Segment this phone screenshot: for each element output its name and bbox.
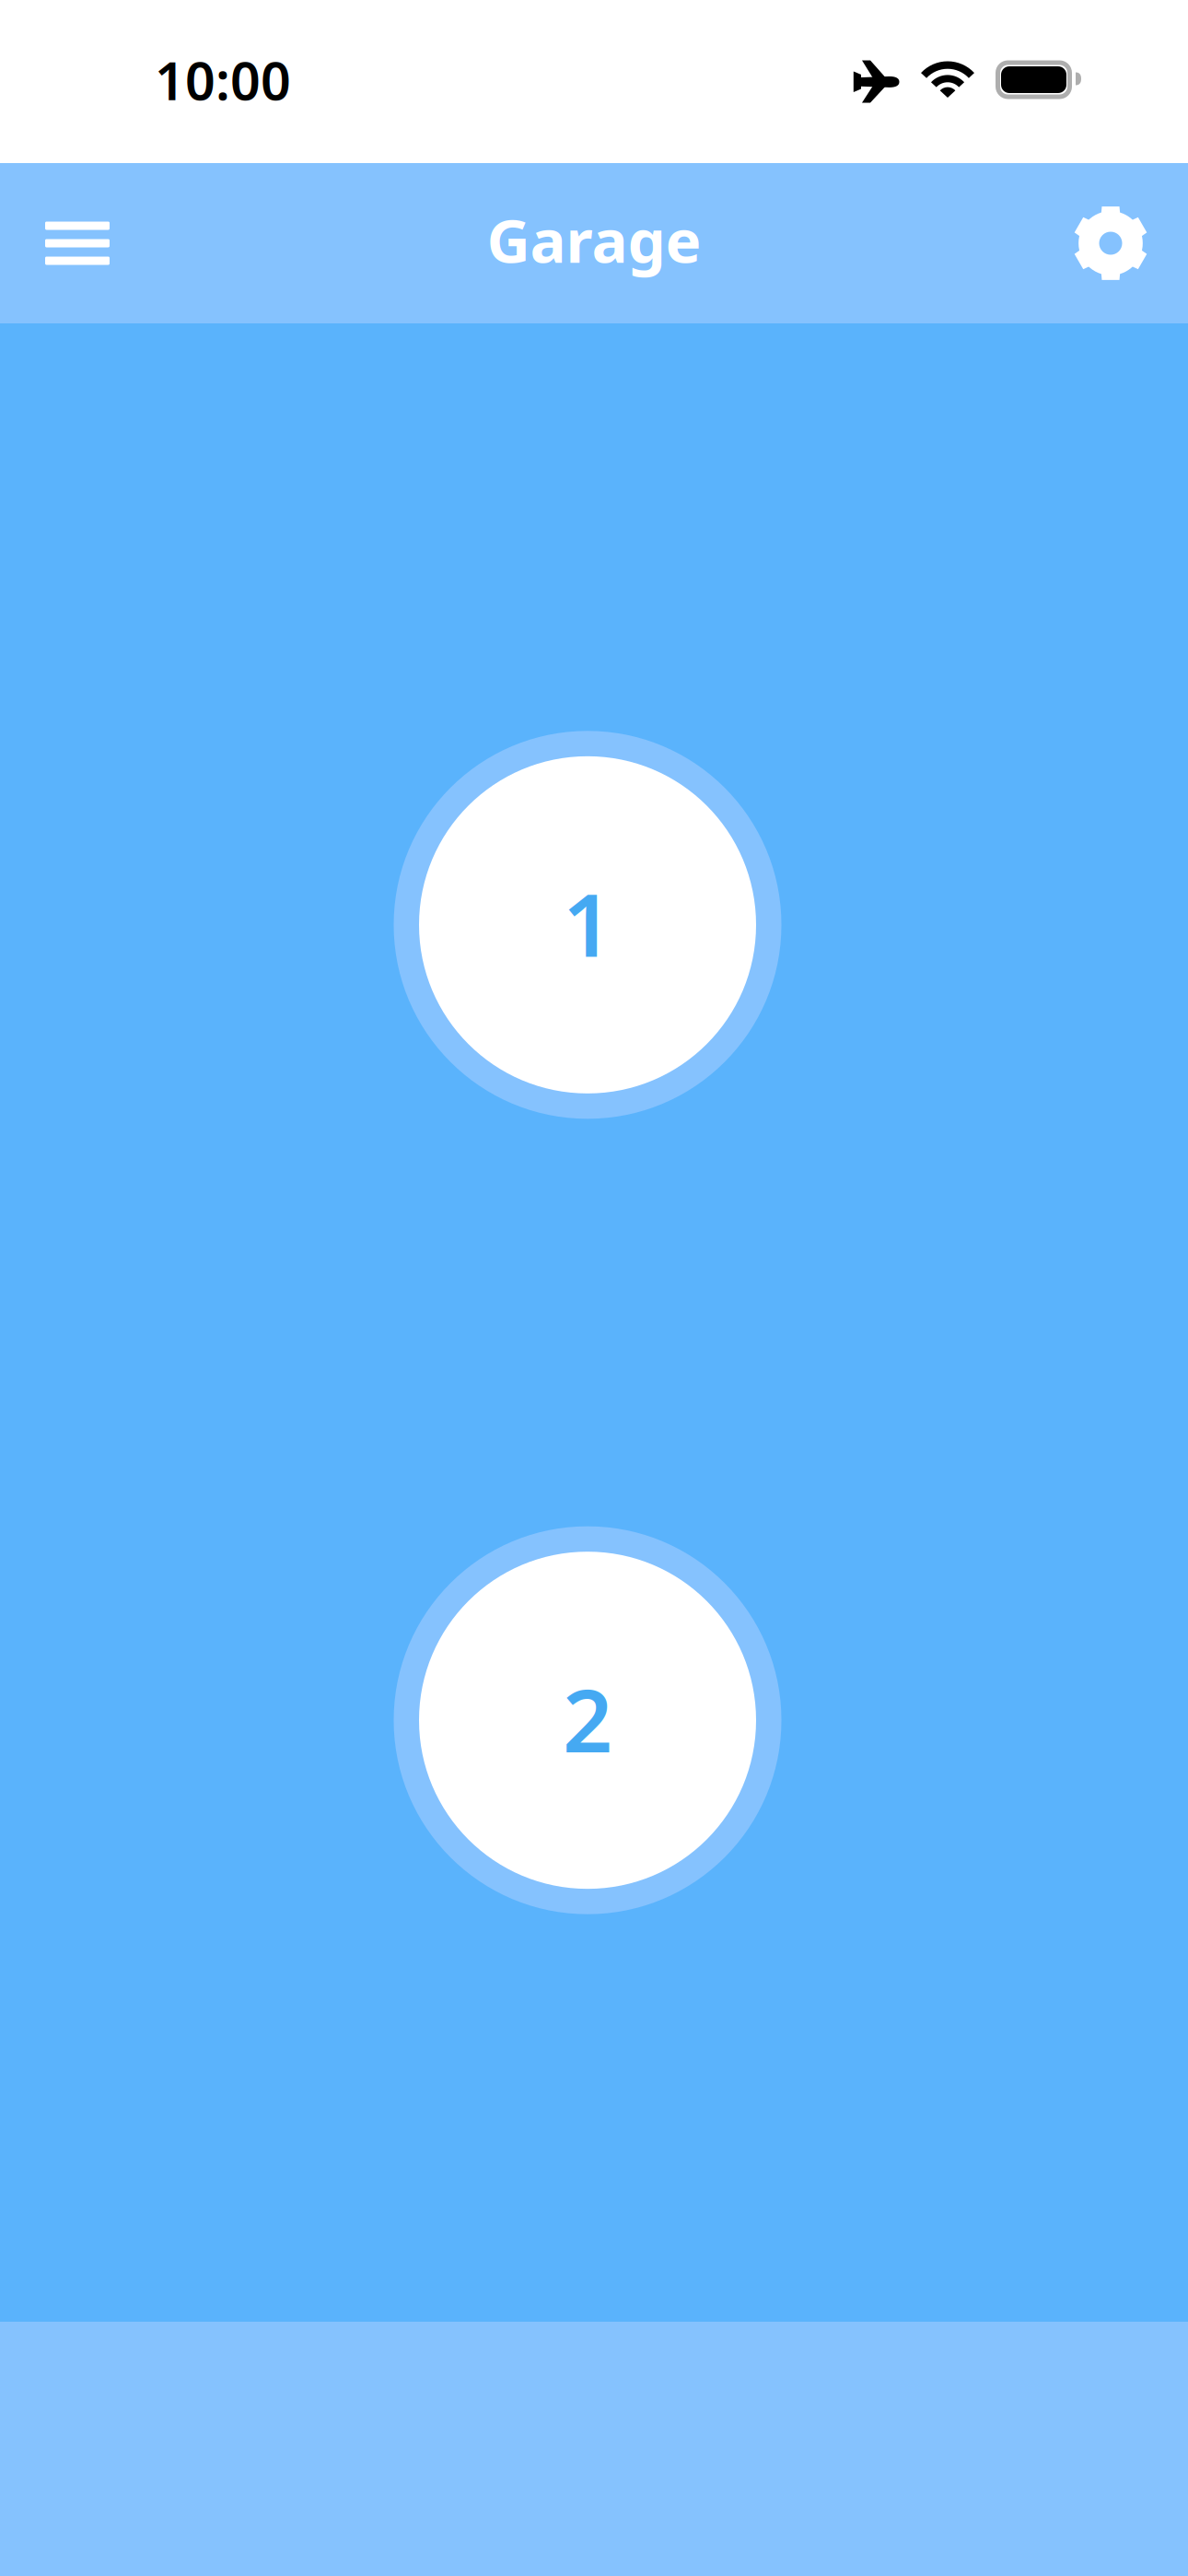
button[interactable]: Menu (24, 190, 131, 297)
button[interactable]: Garage door 2 (394, 1526, 781, 1914)
button[interactable]: Settings (1057, 190, 1164, 297)
staticText: 1 (563, 865, 612, 981)
staticText: 2 (563, 1660, 612, 1776)
staticText: 10:00 (155, 45, 291, 115)
staticText: Garage (487, 200, 701, 280)
button[interactable]: Garage door 1 (394, 731, 781, 1119)
